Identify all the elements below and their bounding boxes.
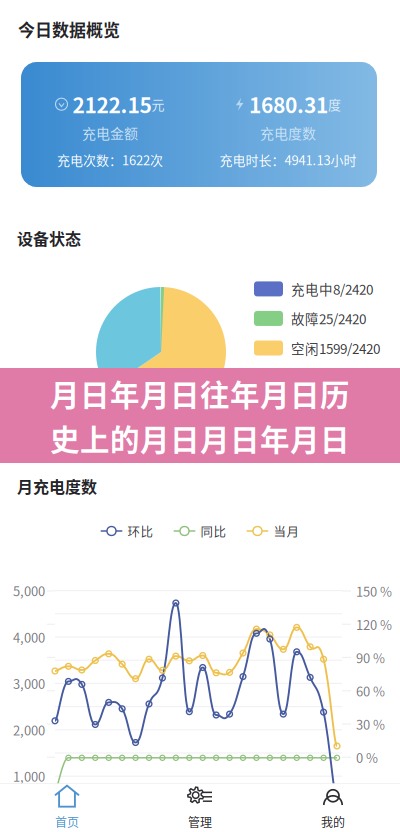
staticText: 当月 <box>273 522 299 540</box>
staticText: 1,000 <box>13 767 45 786</box>
staticText: 同比 <box>200 522 226 540</box>
staticText: 5,000 <box>13 581 45 600</box>
staticText: 插枪空闲6/2420 <box>291 368 387 387</box>
staticText: 60 % <box>356 681 385 700</box>
staticText: 充电中8/2420 <box>291 279 373 299</box>
staticText: 0 % <box>356 748 378 767</box>
staticText: 3,000 <box>13 674 45 693</box>
staticText: 充电度数 <box>260 122 316 143</box>
staticText: 环比 <box>127 522 153 540</box>
staticText: 元 <box>151 95 164 114</box>
staticText: 离线782/2420 <box>291 397 373 417</box>
button[interactable]: 管理 <box>133 784 266 832</box>
staticText: 1680.31 <box>244 89 328 119</box>
staticText: 充电金额 <box>82 122 138 143</box>
staticText: 90 % <box>356 648 385 667</box>
staticText: 4,000 <box>13 628 45 646</box>
staticText: 月日年月日往年月日历 <box>50 372 350 414</box>
button[interactable]: 我的 <box>266 784 399 832</box>
staticText: 充电次数：1622次 <box>57 150 163 169</box>
staticText: 我的 <box>321 813 345 831</box>
staticText: 史上的月日月日年月日 <box>50 416 350 459</box>
staticText: 空闲1599/2420 <box>291 338 380 358</box>
button[interactable]: 首页 <box>0 784 133 832</box>
staticText: 月充电度数 <box>17 474 97 498</box>
staticText: 30 % <box>356 715 385 733</box>
staticText: 管理 <box>188 813 212 831</box>
staticText: 充电时长：4941.13小时 <box>219 150 356 169</box>
staticText: 故障25/2420 <box>291 309 366 328</box>
staticText: 今日数据概览 <box>18 17 120 41</box>
staticText: 2,000 <box>13 720 45 739</box>
staticText: 设备状态 <box>17 226 81 250</box>
staticText: 首页 <box>55 813 79 831</box>
staticText: 120 % <box>356 615 392 634</box>
staticText: 度 <box>328 95 341 114</box>
staticText: 2122.15 <box>67 89 151 119</box>
staticText: 150 % <box>356 582 392 600</box>
